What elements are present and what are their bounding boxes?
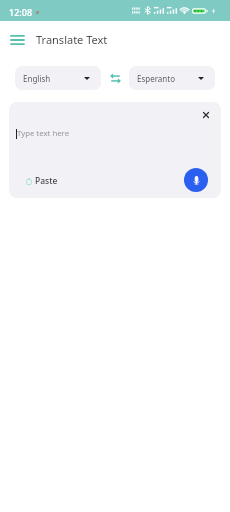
button[interactable]: Esperanto <box>129 66 215 90</box>
staticText: Esperanto <box>137 73 176 84</box>
button[interactable]: English <box>15 66 101 90</box>
button[interactable]: Swap languages <box>101 66 129 90</box>
button[interactable]: Paste <box>26 175 58 187</box>
staticText: Paste <box>35 175 58 187</box>
button[interactable]: Clear text <box>195 104 217 126</box>
button[interactable]: Open navigation menu <box>5 28 29 52</box>
staticText: English <box>23 73 51 84</box>
button[interactable]: Voice input <box>184 168 208 192</box>
staticText: 12:08 <box>9 6 33 18</box>
staticText: Type text here <box>17 128 70 139</box>
staticText: Translate Text <box>36 32 108 47</box>
